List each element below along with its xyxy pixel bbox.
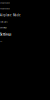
staticText: Airplane Mode bbox=[0, 2, 10, 4]
staticText: Settings bbox=[0, 33, 11, 36]
staticText: Notifications bbox=[0, 21, 8, 23]
staticText: Wi-Fi bbox=[0, 40, 2, 42]
staticText: Airplane Mode bbox=[0, 13, 21, 17]
staticText: Airplane Mode bbox=[0, 8, 10, 10]
staticText: Settings bbox=[0, 27, 7, 29]
